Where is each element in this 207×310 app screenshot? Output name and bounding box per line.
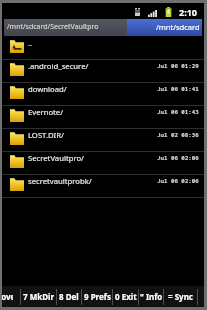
staticText: " Info xyxy=(140,291,163,302)
staticText: Jul 06 02:06 xyxy=(157,177,199,185)
staticText: 8 Del xyxy=(59,291,79,302)
button[interactable]: 8 Del xyxy=(57,286,81,307)
staticText: LOST.DIR/ xyxy=(28,130,64,140)
staticText: Jul 06 01:41 xyxy=(157,85,199,93)
button[interactable]: .android_secure/ xyxy=(2,60,204,83)
staticText: 6 Move xyxy=(2,291,13,302)
button[interactable]: " Info xyxy=(139,286,163,307)
staticText: 7 MkDir xyxy=(23,291,54,302)
staticText: Jul 06 02:06 xyxy=(157,154,199,162)
staticText: 2:10 xyxy=(179,6,197,18)
staticText: download/ xyxy=(28,84,67,94)
staticText: Jul 02 08:36 xyxy=(157,131,199,139)
button[interactable]: SecretVaultpro/ xyxy=(2,152,204,175)
staticText: /mnt/sdcard xyxy=(156,22,200,32)
button[interactable]: Evernote/ xyxy=(2,106,204,129)
button[interactable]: .. xyxy=(2,37,204,60)
button[interactable]: = Sync xyxy=(164,286,197,307)
button[interactable]: secretvaultprobk/ xyxy=(2,175,204,198)
staticText: Jul 06 01:29 xyxy=(157,62,199,70)
staticText: 9 Prefs xyxy=(84,291,111,302)
staticText: 0 Exit xyxy=(115,291,137,302)
button[interactable]: 9 Prefs xyxy=(82,286,112,307)
button[interactable]: 7 MkDir xyxy=(21,286,56,307)
staticText: /mnt/sdcard/SecretVaultpro xyxy=(7,22,99,32)
staticText: = Sync xyxy=(168,291,193,302)
staticText: secretvaultprobk/ xyxy=(28,176,92,186)
staticText: .. xyxy=(28,38,33,48)
button[interactable]: 6 Move xyxy=(2,286,20,307)
button[interactable]: download/ xyxy=(2,83,204,106)
staticText: SecretVaultpro/ xyxy=(28,153,84,163)
staticText: .android_secure/ xyxy=(28,61,89,71)
button[interactable]: /mnt/sdcard xyxy=(127,19,202,36)
staticText: Jul 06 01:43 xyxy=(157,108,199,116)
staticText: Evernote/ xyxy=(28,107,64,117)
button[interactable]: LOST.DIR/ xyxy=(2,129,204,152)
button[interactable]: 0 Exit xyxy=(113,286,138,307)
